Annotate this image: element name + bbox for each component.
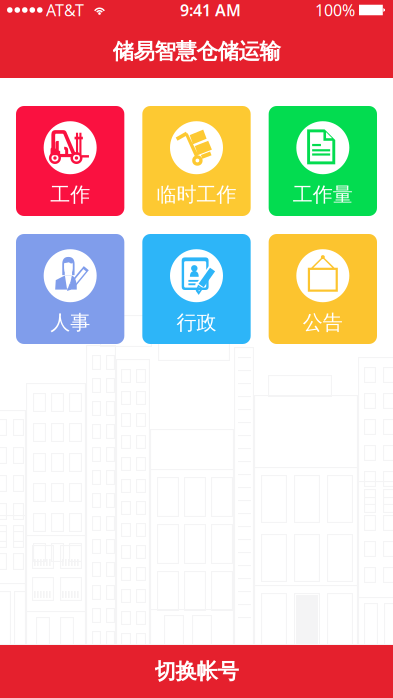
- staticText: 临时工作: [156, 182, 236, 207]
- staticText: 100%: [315, 0, 355, 21]
- button[interactable]: 临时工作: [142, 106, 251, 216]
- staticText: 储易智慧仓储运输: [112, 38, 280, 65]
- staticText: AT&T: [46, 0, 84, 21]
- staticText: 工作: [50, 182, 90, 207]
- staticText: 公告: [303, 310, 343, 335]
- button[interactable]: 工作量: [269, 106, 377, 216]
- staticText: 行政: [176, 310, 216, 335]
- button[interactable]: 切换帐号: [0, 645, 393, 698]
- staticText: 人事: [50, 310, 90, 335]
- button[interactable]: 工作: [16, 106, 124, 216]
- staticText: 切换帐号: [154, 658, 238, 685]
- button[interactable]: 公告: [269, 234, 377, 344]
- button[interactable]: 行政: [142, 234, 251, 344]
- button[interactable]: 人事: [16, 234, 124, 344]
- staticText: 9:41 AM: [180, 0, 241, 21]
- staticText: 工作量: [293, 182, 353, 207]
